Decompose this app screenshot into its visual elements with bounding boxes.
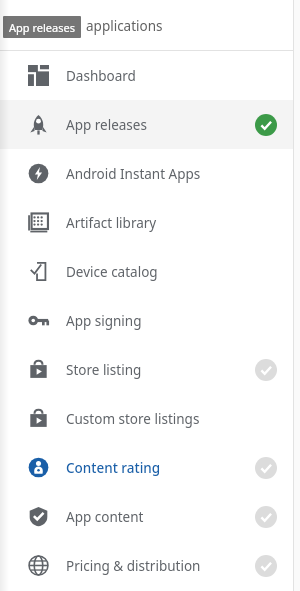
staticText: Pricing & distribution	[66, 557, 201, 575]
button[interactable]: Dashboard	[0, 51, 293, 100]
button[interactable]: Device catalog	[0, 247, 293, 296]
button[interactable]: Custom store listings	[0, 394, 293, 443]
staticText: App releases	[9, 20, 75, 35]
staticText: Store listing	[66, 361, 142, 379]
staticText: Dashboard	[66, 67, 136, 85]
staticText: App content	[66, 508, 144, 526]
button[interactable]: Android Instant Apps	[0, 149, 293, 198]
staticText: Content rating	[66, 459, 161, 477]
button[interactable]: Pricing & distribution	[0, 541, 293, 590]
staticText: App releases	[66, 116, 147, 134]
staticText: Artifact library	[66, 214, 157, 232]
staticText: Custom store listings	[66, 410, 200, 428]
button[interactable]: App releases	[0, 100, 293, 149]
button[interactable]: Store listing	[0, 345, 293, 394]
button[interactable]: Artifact library	[0, 198, 293, 247]
button[interactable]: App content	[0, 492, 293, 541]
button[interactable]: App signing	[0, 296, 293, 345]
staticText: Android Instant Apps	[66, 165, 201, 183]
button[interactable]: Content rating	[0, 443, 293, 492]
staticText: applications	[86, 17, 163, 35]
staticText: App signing	[66, 312, 142, 330]
staticText: Device catalog	[66, 263, 158, 281]
